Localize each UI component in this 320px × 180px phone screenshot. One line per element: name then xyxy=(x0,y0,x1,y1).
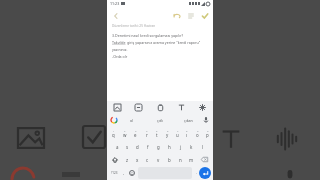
staticText: 6 xyxy=(167,129,169,132)
staticText: 2 xyxy=(124,129,126,132)
staticText: , xyxy=(123,170,125,176)
staticText: e xyxy=(134,132,137,138)
button[interactable]: ?123 xyxy=(109,167,120,179)
staticText: ol xyxy=(130,118,134,123)
button[interactable]: Redo xyxy=(185,10,196,21)
staticText: k xyxy=(190,144,193,150)
staticText: c xyxy=(146,157,149,163)
button[interactable]: . xyxy=(194,167,199,179)
button[interactable]: 9 xyxy=(192,127,202,140)
button[interactable]: 1 xyxy=(108,127,119,140)
staticText: v xyxy=(157,157,160,163)
staticText: 0 xyxy=(207,129,209,132)
staticText: p xyxy=(206,132,209,138)
staticText: ?123 xyxy=(111,171,118,175)
button[interactable]: Text style xyxy=(176,102,187,113)
button[interactable]: 5 xyxy=(152,127,162,140)
staticText: 3 xyxy=(135,129,137,132)
button[interactable]: g xyxy=(153,140,164,153)
button[interactable]: Google xyxy=(110,116,118,124)
button[interactable]: k xyxy=(186,140,197,153)
button[interactable]: 0 xyxy=(202,127,212,140)
button[interactable]: s xyxy=(122,140,132,153)
button[interactable]: j xyxy=(175,140,186,153)
button[interactable]: d xyxy=(132,140,142,153)
staticText: r xyxy=(146,132,148,138)
button[interactable]: l xyxy=(197,140,208,153)
staticText: u xyxy=(176,132,179,138)
button[interactable]: Emoji xyxy=(127,167,136,179)
button[interactable]: Clipboard xyxy=(155,102,166,113)
button[interactable]: c xyxy=(142,153,153,166)
staticText: giriş yaparsınız arama yerine "kredi rap… xyxy=(126,40,201,45)
button[interactable]: Insert image xyxy=(112,102,123,113)
staticText: 8 xyxy=(186,129,188,132)
button[interactable]: 2 xyxy=(119,127,130,140)
staticText: a xyxy=(116,144,119,150)
staticText: 1 xyxy=(113,129,115,132)
staticText: t xyxy=(156,132,158,138)
staticText: b xyxy=(168,157,171,163)
staticText: f xyxy=(147,144,149,150)
button[interactable]: 4 xyxy=(141,127,152,140)
staticText: Düzenleme tarihi: 25 Haziran xyxy=(112,24,156,28)
staticText: n xyxy=(179,157,182,163)
staticText: 9 xyxy=(197,129,199,132)
button[interactable]: , xyxy=(120,167,127,179)
staticText: d xyxy=(136,144,139,150)
staticText: -Orda olr xyxy=(112,54,128,59)
staticText: x xyxy=(136,157,139,163)
staticText: m xyxy=(189,157,194,163)
button[interactable]: Enter xyxy=(199,167,211,179)
staticText: 11:23 xyxy=(110,1,120,6)
staticText: Takvilde xyxy=(112,40,126,45)
button[interactable]: GIF xyxy=(133,102,144,113)
button[interactable]: a xyxy=(112,140,122,153)
staticText: z xyxy=(126,157,129,163)
staticText: h xyxy=(168,144,171,150)
button[interactable]: z xyxy=(122,153,132,166)
staticText: s xyxy=(126,144,129,150)
staticText: yazınınız. xyxy=(112,47,128,52)
button[interactable]: f xyxy=(142,140,153,153)
staticText: j xyxy=(180,144,182,150)
button[interactable]: Done xyxy=(199,10,210,21)
button[interactable]: 7 xyxy=(172,127,182,140)
button[interactable]: Settings xyxy=(197,102,208,113)
button[interactable]: Shift xyxy=(108,153,122,166)
staticText: çıtlı xyxy=(157,118,163,123)
staticText: 5 xyxy=(156,129,158,132)
button[interactable]: 3 xyxy=(130,127,141,140)
staticText: w xyxy=(123,132,127,138)
button[interactable]: 8 xyxy=(182,127,192,140)
button[interactable]: n xyxy=(175,153,186,166)
staticText: 4 xyxy=(146,129,148,132)
staticText: q xyxy=(112,132,115,138)
button[interactable]: b xyxy=(164,153,175,166)
button[interactable]: v xyxy=(153,153,164,166)
button[interactable]: Voice input xyxy=(202,116,210,124)
button[interactable]: Backspace xyxy=(197,153,212,166)
staticText: y xyxy=(166,132,169,138)
button[interactable]: Back xyxy=(110,10,121,21)
staticText: g xyxy=(157,144,160,150)
staticText: o xyxy=(196,132,199,138)
button[interactable]: h xyxy=(164,140,175,153)
staticText: l xyxy=(202,144,204,150)
button[interactable]: x xyxy=(132,153,142,166)
staticText: 7 xyxy=(177,129,179,132)
button[interactable]: Undo xyxy=(171,10,182,21)
staticText: ı xyxy=(186,132,188,138)
button[interactable]: 6 xyxy=(162,127,172,140)
staticText: çıkan xyxy=(184,118,193,123)
staticText: 3.Denetimi nasıl kredi sorgulaması yapıl… xyxy=(112,33,184,38)
staticText: . xyxy=(196,170,198,176)
button[interactable]: m xyxy=(186,153,197,166)
